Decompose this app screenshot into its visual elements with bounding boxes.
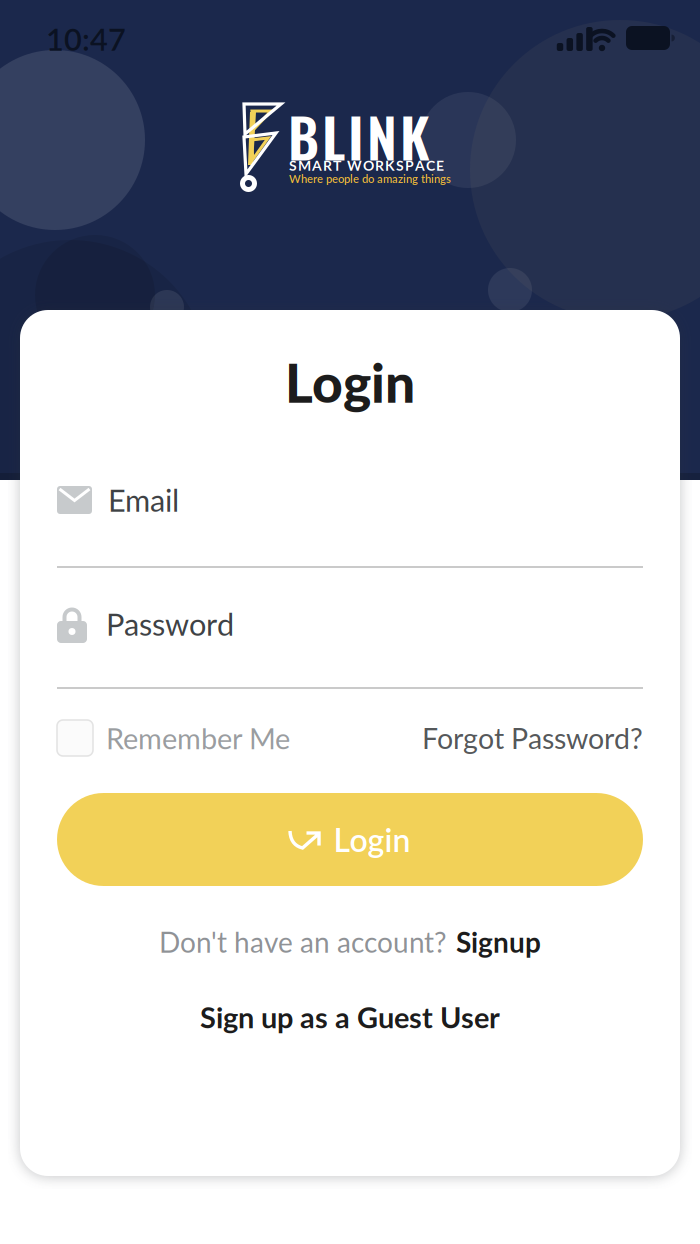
staticText: B L I N K [288, 96, 430, 176]
button[interactable]: Login [57, 793, 643, 886]
button[interactable]: Forgot Password? [422, 721, 643, 755]
staticText: 10:47 [46, 21, 126, 57]
staticText: Login [285, 350, 415, 414]
staticText: Where people do amazing things [289, 172, 451, 185]
staticText: Forgot Password? [422, 721, 643, 755]
staticText: Email [108, 482, 179, 518]
staticText: Sign up as a Guest User [200, 1000, 500, 1034]
button[interactable]: Sign up as a Guest User [200, 972, 500, 1047]
staticText: Don't have an account? [159, 925, 447, 959]
staticText: Remember Me [106, 721, 290, 755]
button[interactable]: Password [57, 568, 643, 658]
button[interactable]: Remember Me [57, 720, 290, 756]
staticText: Signup [456, 925, 541, 959]
button[interactable]: Email [57, 460, 643, 534]
staticText: Login [333, 820, 410, 859]
staticText: Password [106, 606, 234, 642]
button[interactable]: Don't have an account? [159, 886, 541, 972]
staticText: S M A R T W O R K S P A C E [289, 157, 444, 174]
